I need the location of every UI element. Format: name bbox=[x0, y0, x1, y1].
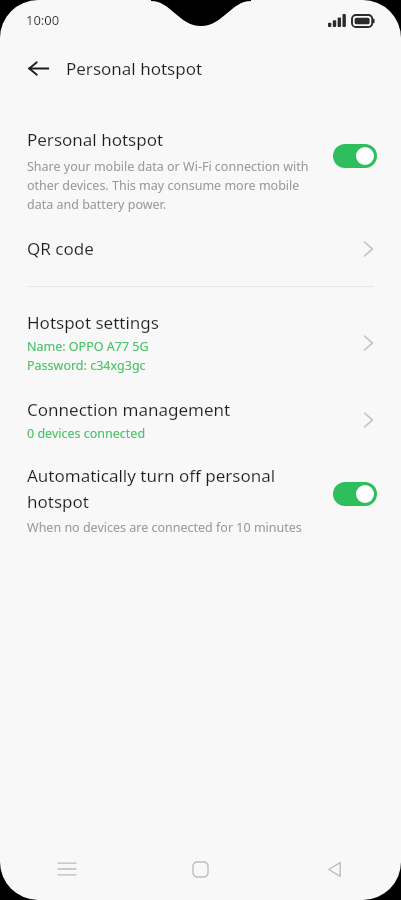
button[interactable]: QR code bbox=[0, 231, 401, 266]
button[interactable]: Back bbox=[267, 838, 401, 900]
staticText: Personal hotspot bbox=[27, 128, 164, 151]
button[interactable]: Toggle bbox=[333, 144, 377, 168]
staticText: QR code bbox=[27, 237, 363, 260]
button[interactable]: Toggle bbox=[333, 482, 377, 506]
staticText: 0 devices connected bbox=[27, 425, 146, 442]
staticText: Hotspot settings bbox=[27, 311, 159, 334]
button[interactable]: Hotspot settings bbox=[0, 311, 401, 374]
button[interactable]: Back bbox=[14, 44, 62, 92]
staticText: 10:00 bbox=[26, 11, 60, 29]
staticText: Automatically turn off personal hotspot bbox=[27, 464, 321, 513]
staticText: Name: OPPO A77 5G bbox=[27, 338, 149, 355]
button[interactable]: Personal hotspot bbox=[0, 128, 401, 213]
button[interactable]: Connection management bbox=[0, 398, 401, 442]
staticText: When no devices are connected for 10 min… bbox=[27, 519, 302, 536]
button[interactable]: Automatically turn off personal hotspot bbox=[0, 464, 401, 536]
staticText: Personal hotspot bbox=[66, 57, 203, 80]
staticText: Share your mobile data or Wi-Fi connecti… bbox=[27, 158, 321, 213]
button[interactable]: Home bbox=[133, 838, 267, 900]
staticText: Password: c34xg3gc bbox=[27, 357, 146, 374]
staticText: Connection management bbox=[27, 398, 231, 421]
button[interactable]: Recent apps bbox=[0, 838, 133, 900]
